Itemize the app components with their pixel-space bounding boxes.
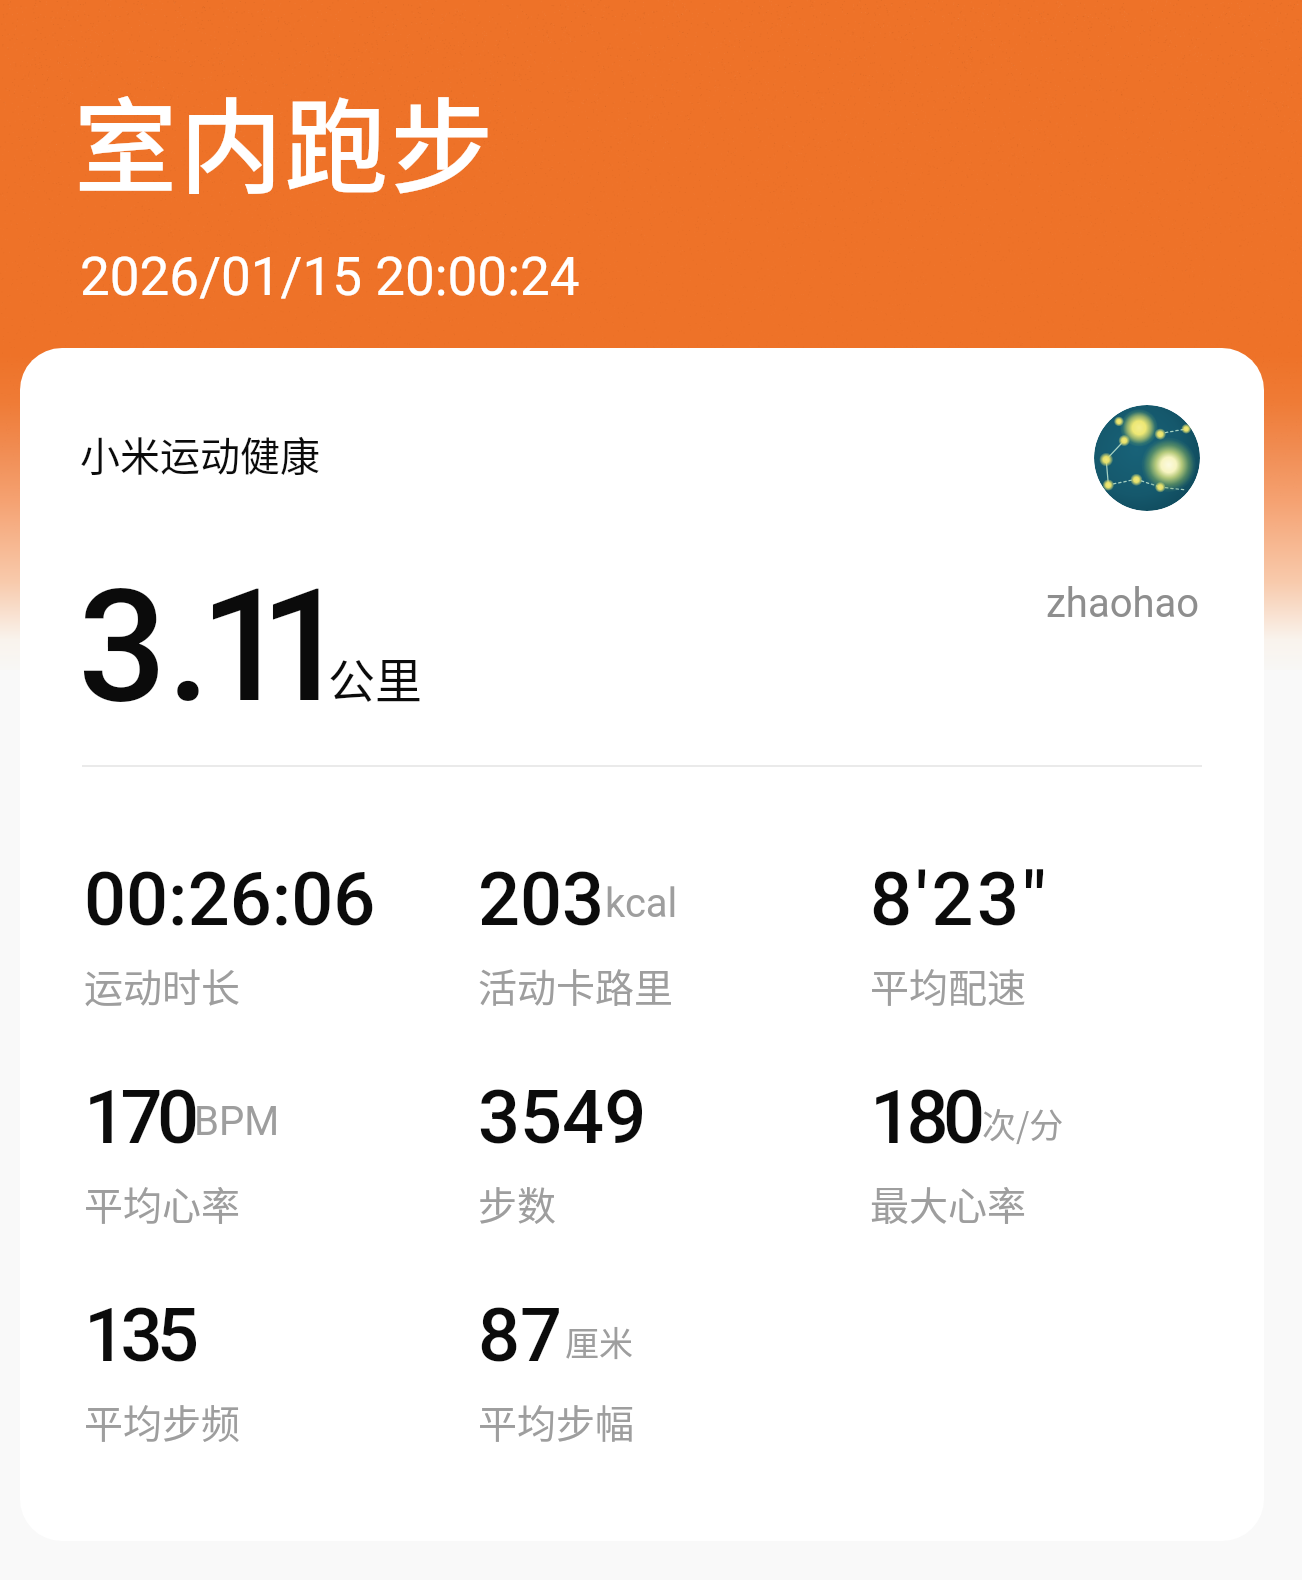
staticText: 平均配速 (870, 957, 1027, 1013)
staticText: 3 (78, 555, 167, 738)
staticText: 室内跑步 (74, 66, 496, 215)
button[interactable]: 203 (478, 856, 848, 1013)
staticText: kcal (605, 880, 678, 927)
staticText: 1 (260, 555, 349, 738)
button[interactable]: 3549 (478, 1074, 848, 1231)
button[interactable]: 小米运动健康 (20, 348, 1264, 1541)
staticText: 8'23" (870, 856, 1050, 943)
staticText: 203 (478, 856, 605, 943)
staticText: 1 (200, 555, 289, 738)
staticText: 180 (870, 1074, 980, 1161)
staticText: . (167, 555, 211, 738)
staticText: 小米运动健康 (80, 425, 320, 483)
staticText: 平均步幅 (478, 1393, 635, 1449)
staticText: 00:26:06 (84, 856, 376, 943)
staticText: 87 (478, 1292, 563, 1379)
staticText: BPM (194, 1098, 280, 1145)
staticText: 运动时长 (84, 957, 241, 1013)
staticText: 170 (84, 1074, 194, 1161)
staticText: 135 (84, 1292, 194, 1379)
button[interactable]: Profile avatar (1094, 405, 1200, 511)
staticText: 步数 (478, 1175, 557, 1231)
staticText: 平均心率 (84, 1175, 241, 1231)
button[interactable]: 170 (84, 1074, 454, 1231)
staticText: 最大心率 (870, 1175, 1027, 1231)
staticText: 3549 (478, 1074, 647, 1161)
staticText: 厘米 (565, 1317, 633, 1366)
button[interactable]: 8'23" (870, 856, 1240, 1013)
button[interactable]: 00:26:06 (84, 856, 454, 1013)
staticText: 活动卡路里 (478, 957, 674, 1013)
button[interactable]: 180 (870, 1074, 1240, 1231)
button[interactable]: 135 (84, 1292, 454, 1449)
button[interactable]: 87 (478, 1292, 848, 1449)
staticText: 次/分 (982, 1099, 1064, 1148)
staticText: 2026/01/15 20:00:24 (80, 246, 580, 308)
staticText: 公里 (328, 643, 422, 711)
staticText: zhaohao (1046, 580, 1200, 627)
staticText: 平均步频 (84, 1393, 241, 1449)
